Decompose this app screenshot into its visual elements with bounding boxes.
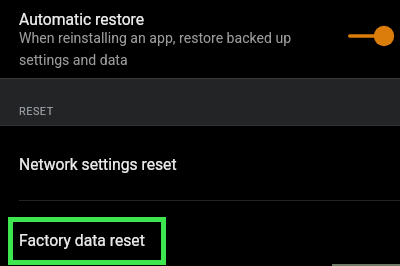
button[interactable]: Automatic restore	[0, 0, 400, 78]
staticText: When reinstalling an app, restore backed…	[19, 30, 297, 69]
button[interactable]: Factory data reset	[0, 201, 400, 266]
staticText: Network settings reset	[19, 155, 177, 173]
staticText: Factory data reset	[19, 231, 145, 249]
staticText: Automatic restore	[19, 10, 145, 28]
button[interactable]: Network settings reset	[0, 126, 400, 201]
staticText: RESET	[19, 105, 54, 118]
button[interactable]: Automatic restore toggle	[334, 0, 400, 78]
